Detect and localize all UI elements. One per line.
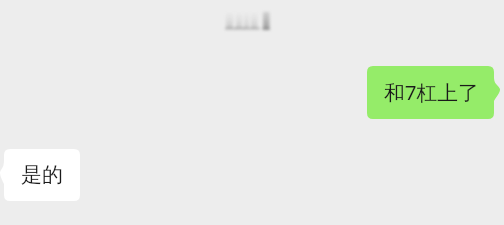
staticText: 是的 [21,162,63,188]
button[interactable]: 是的 [0,149,80,201]
staticText: 和7杠上了 [384,78,479,106]
button[interactable]: 和7杠上了 [367,66,500,119]
button[interactable]: Message time [220,8,276,36]
